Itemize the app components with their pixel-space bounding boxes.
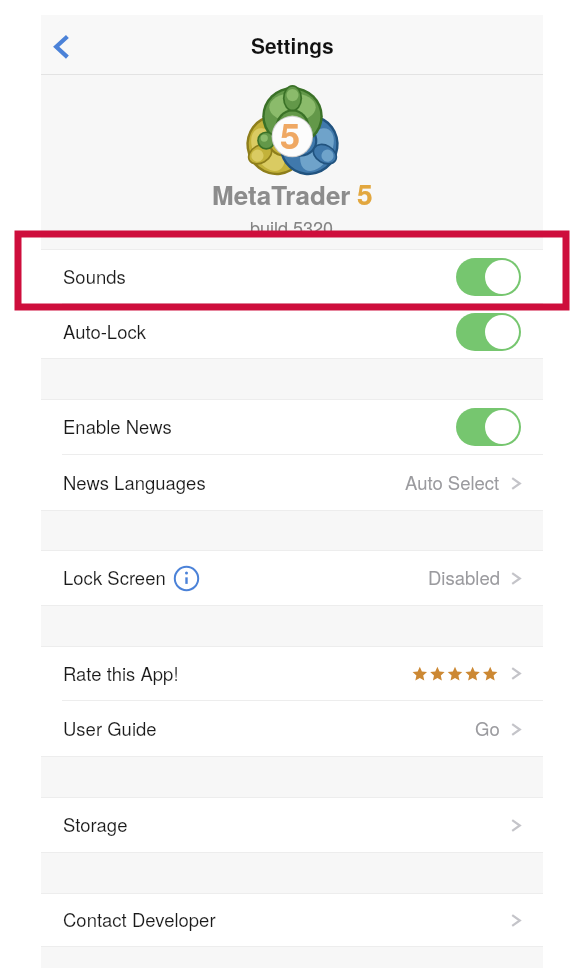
staticText: Auto Select	[405, 469, 500, 495]
button[interactable]: Storage	[41, 797, 543, 853]
button[interactable]: Auto-Lock	[41, 304, 543, 359]
staticText: Lock Screen	[63, 564, 166, 590]
button[interactable]: Toggle Sounds	[456, 258, 521, 296]
staticText: Go	[475, 715, 500, 741]
staticText: 5	[357, 173, 373, 213]
staticText: Contact Developer	[63, 906, 216, 932]
staticText: User Guide	[63, 715, 157, 741]
button[interactable]: Sounds	[41, 249, 543, 304]
button[interactable]: User Guide	[41, 701, 543, 757]
staticText: Enable News	[63, 413, 172, 439]
button[interactable]: Toggle Enable News	[456, 408, 521, 446]
staticText: Rate this App!	[63, 660, 179, 686]
staticText: 5	[280, 108, 301, 160]
staticText: Disabled	[428, 564, 500, 590]
staticText: Auto-Lock	[63, 318, 147, 344]
staticText: Sounds	[63, 263, 126, 289]
button[interactable]: Rate this App!	[41, 646, 543, 701]
staticText: MetaTrader	[212, 176, 351, 213]
staticText: build 5320	[250, 214, 334, 240]
button[interactable]: Contact Developer	[41, 893, 543, 947]
button[interactable]: Toggle Auto-Lock	[456, 313, 521, 351]
button[interactable]: Lock Screen	[41, 550, 543, 606]
staticText: Settings	[251, 30, 334, 60]
staticText: Storage	[63, 811, 128, 837]
staticText: News Languages	[63, 469, 206, 495]
button[interactable]: News Languages	[41, 455, 543, 511]
button[interactable]: Enable News	[41, 399, 543, 455]
button[interactable]: Back	[45, 22, 91, 68]
